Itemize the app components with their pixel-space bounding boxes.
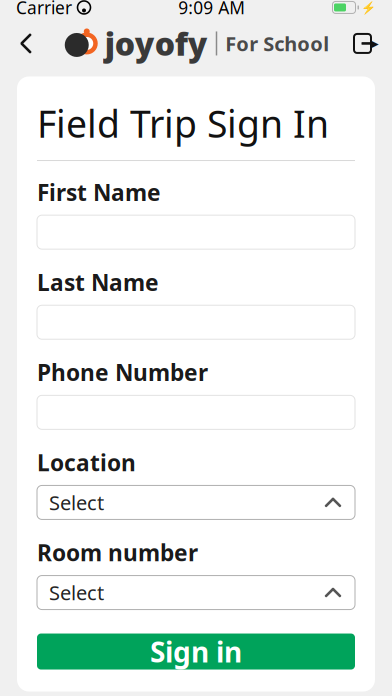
staticText: First Name [37, 177, 161, 207]
button[interactable]: Select [37, 575, 355, 609]
staticText: Select [49, 489, 104, 516]
button[interactable]: Log out [344, 21, 388, 65]
staticText: ▶ [370, 37, 378, 49]
button[interactable]: Back [4, 21, 48, 65]
staticText: For School [225, 30, 329, 57]
staticText: Carrier [16, 0, 72, 19]
staticText: Phone Number [37, 357, 208, 387]
staticText: Sign in [150, 633, 242, 670]
staticText: Room number [37, 537, 198, 567]
staticText: joyofy [105, 22, 208, 65]
staticText: Location [37, 447, 136, 477]
button[interactable]: Sign in [37, 633, 355, 669]
staticText: Select [49, 579, 104, 606]
button[interactable]: Select [37, 485, 355, 519]
staticText: ⚡ [361, 1, 376, 14]
staticText: Last Name [37, 267, 159, 297]
staticText: 9:09 AM [178, 0, 245, 19]
staticText: Field Trip Sign In [37, 98, 329, 148]
